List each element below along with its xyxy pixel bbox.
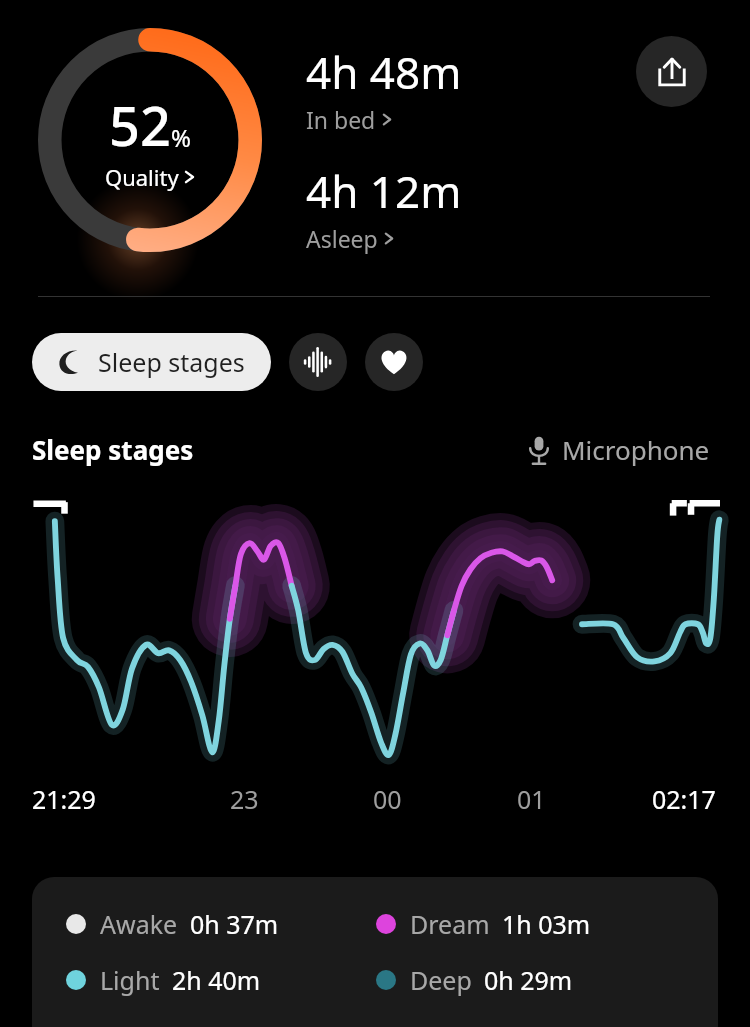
staticText: Microphone [562,432,710,467]
staticText: 0h 29m [484,963,573,997]
staticText: In bed [306,104,376,135]
button[interactable]: In bed [306,104,392,135]
button[interactable]: Share [636,36,707,107]
staticText: Quality [105,162,179,192]
staticText: Deep [410,963,472,997]
button[interactable]: Heart rate [365,333,423,391]
staticText: 02:17 [652,782,716,816]
staticText: Awake [100,907,178,941]
button[interactable]: 52 [38,28,262,252]
staticText: Dream [410,907,490,941]
staticText: Sleep stages [32,432,194,467]
button[interactable]: Microphone [528,432,710,467]
button[interactable]: Sounds [289,333,347,391]
staticText: 21:29 [32,782,96,816]
staticText: Sleep stages [98,345,245,379]
staticText: 0h 37m [190,907,279,941]
button[interactable]: Asleep [306,223,394,254]
staticText: Asleep [306,223,378,254]
button[interactable]: Sleep stages [32,333,271,391]
staticText: 2h 40m [172,963,261,997]
staticText: 01 [517,782,546,816]
staticText: 23 [230,782,259,816]
staticText: 00 [373,782,402,816]
staticText: % [171,121,191,154]
staticText: 4h 48m [306,42,462,102]
button[interactable]: Awake [32,877,718,1027]
staticText: 4h 12m [306,161,462,221]
staticText: 1h 03m [502,907,591,941]
staticText: Light [100,963,160,997]
staticText: 52 [109,88,171,162]
